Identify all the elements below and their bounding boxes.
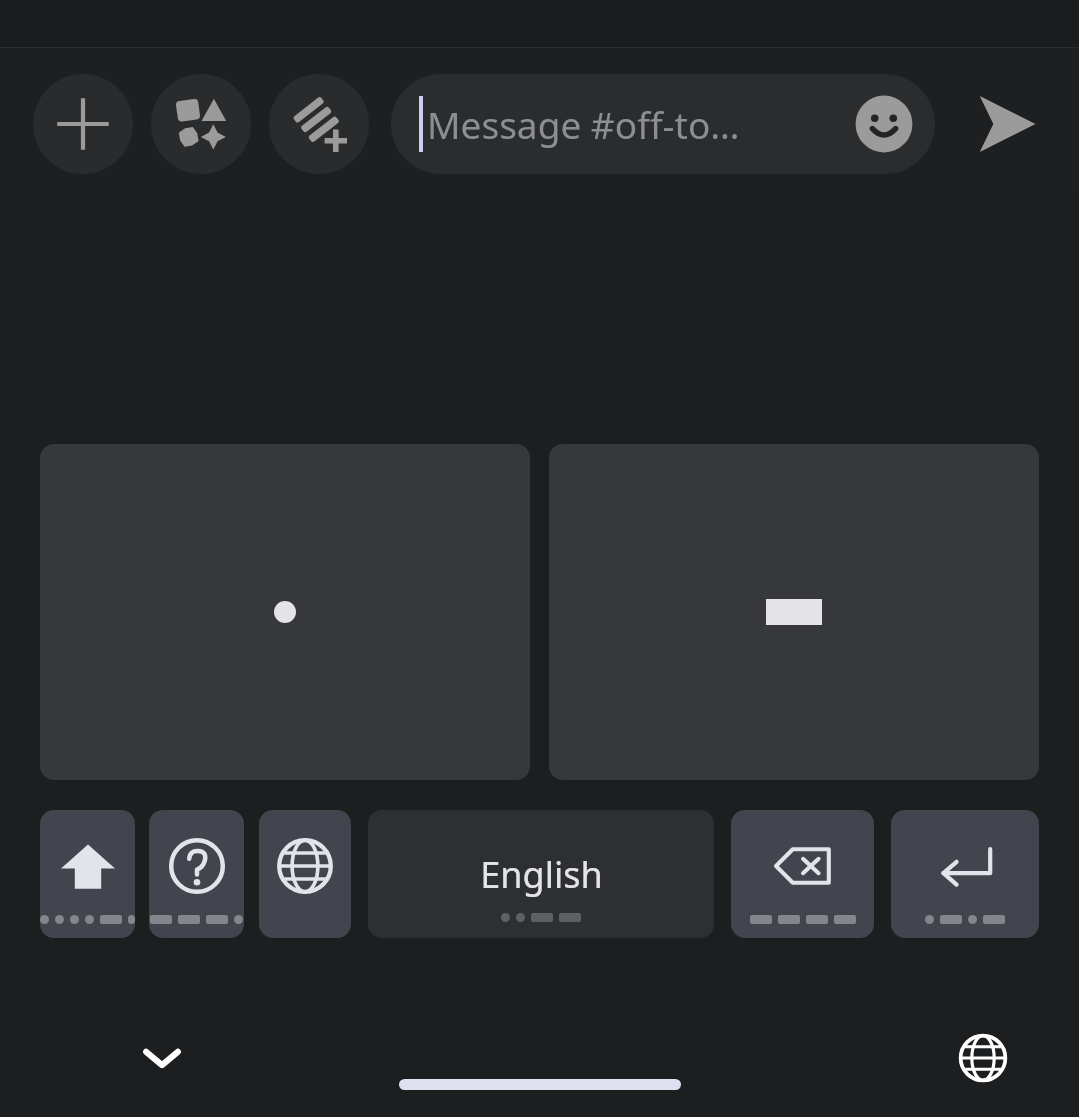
button[interactable]: Switch keyboard — [259, 810, 351, 938]
button[interactable]: Enter — [891, 810, 1039, 938]
staticText: Message #off-to… — [427, 99, 740, 149]
button[interactable]: Help — [149, 810, 244, 938]
button[interactable]: Stickers — [151, 74, 251, 174]
button[interactable]: Emoji — [853, 93, 915, 155]
button[interactable]: Create — [269, 74, 369, 174]
button[interactable]: Dot — [40, 444, 530, 780]
button[interactable]: Message #off-to… — [391, 74, 935, 174]
button[interactable]: Hide keyboard — [112, 1008, 212, 1108]
button[interactable]: Dash — [549, 444, 1039, 780]
staticText: English — [480, 850, 603, 899]
button[interactable]: Shift — [40, 810, 135, 938]
button[interactable]: Backspace — [731, 810, 874, 938]
button[interactable]: Send — [955, 72, 1059, 176]
button[interactable]: English — [368, 810, 714, 938]
button[interactable]: Add attachment — [33, 74, 133, 174]
button[interactable]: Change language — [933, 1008, 1033, 1108]
